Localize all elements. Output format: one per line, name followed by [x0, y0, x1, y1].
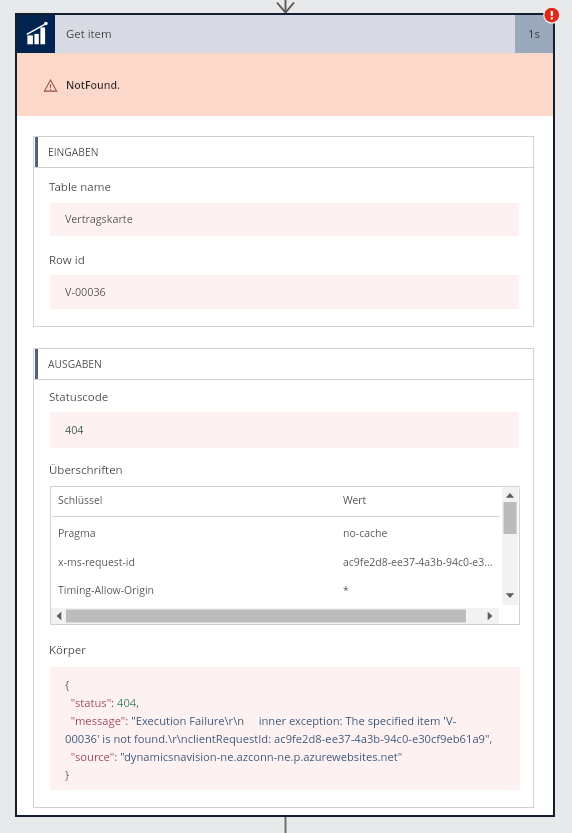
staticText: { "status": 404, "message": "Execution F…	[65, 677, 513, 782]
staticText: no-cache	[343, 526, 388, 540]
staticText: x-ms-request-id	[58, 555, 135, 569]
button[interactable]: Vertragskarte	[50, 203, 519, 236]
staticText: ac9fe2d8-ee37-4a3b-94c0-e3…	[343, 555, 493, 569]
button[interactable]: EINGABEN	[33, 136, 534, 167]
staticText: Wert	[343, 493, 367, 507]
staticText: *	[343, 583, 349, 597]
button[interactable]: V-00036	[50, 275, 519, 309]
staticText: Schlüssel	[58, 493, 103, 507]
button[interactable]: Scroll up	[502, 486, 518, 504]
staticText: Get item	[66, 26, 112, 42]
button[interactable]: 1s	[515, 15, 553, 53]
button[interactable]: Error	[542, 5, 562, 25]
staticText: Row id	[49, 252, 85, 268]
staticText: 1s	[528, 26, 540, 42]
staticText: Körper	[49, 642, 86, 658]
staticText: AUSGABEN	[48, 357, 102, 371]
staticText: EINGABEN	[48, 145, 99, 159]
staticText: Table name	[49, 179, 111, 195]
staticText: Timing-Allow-Origin	[58, 583, 155, 597]
other: Dynamics 365 Business Central connector	[17, 15, 55, 53]
staticText: Statuscode	[49, 389, 109, 405]
staticText: NotFound.	[66, 78, 121, 92]
staticText: 404	[65, 422, 84, 437]
button[interactable]: AUSGABEN	[33, 348, 534, 379]
button[interactable]: Scroll left	[50, 608, 68, 624]
staticText: Vertragskarte	[65, 211, 133, 226]
button[interactable]: 404	[50, 412, 519, 448]
staticText: Pragma	[58, 526, 96, 540]
button[interactable]: Scroll down	[502, 587, 518, 605]
staticText: Überschriften	[49, 462, 123, 478]
staticText: V-00036	[65, 284, 106, 299]
button[interactable]: Dynamics 365 Business Central connector	[17, 15, 553, 53]
button[interactable]: Scroll right	[481, 608, 499, 624]
